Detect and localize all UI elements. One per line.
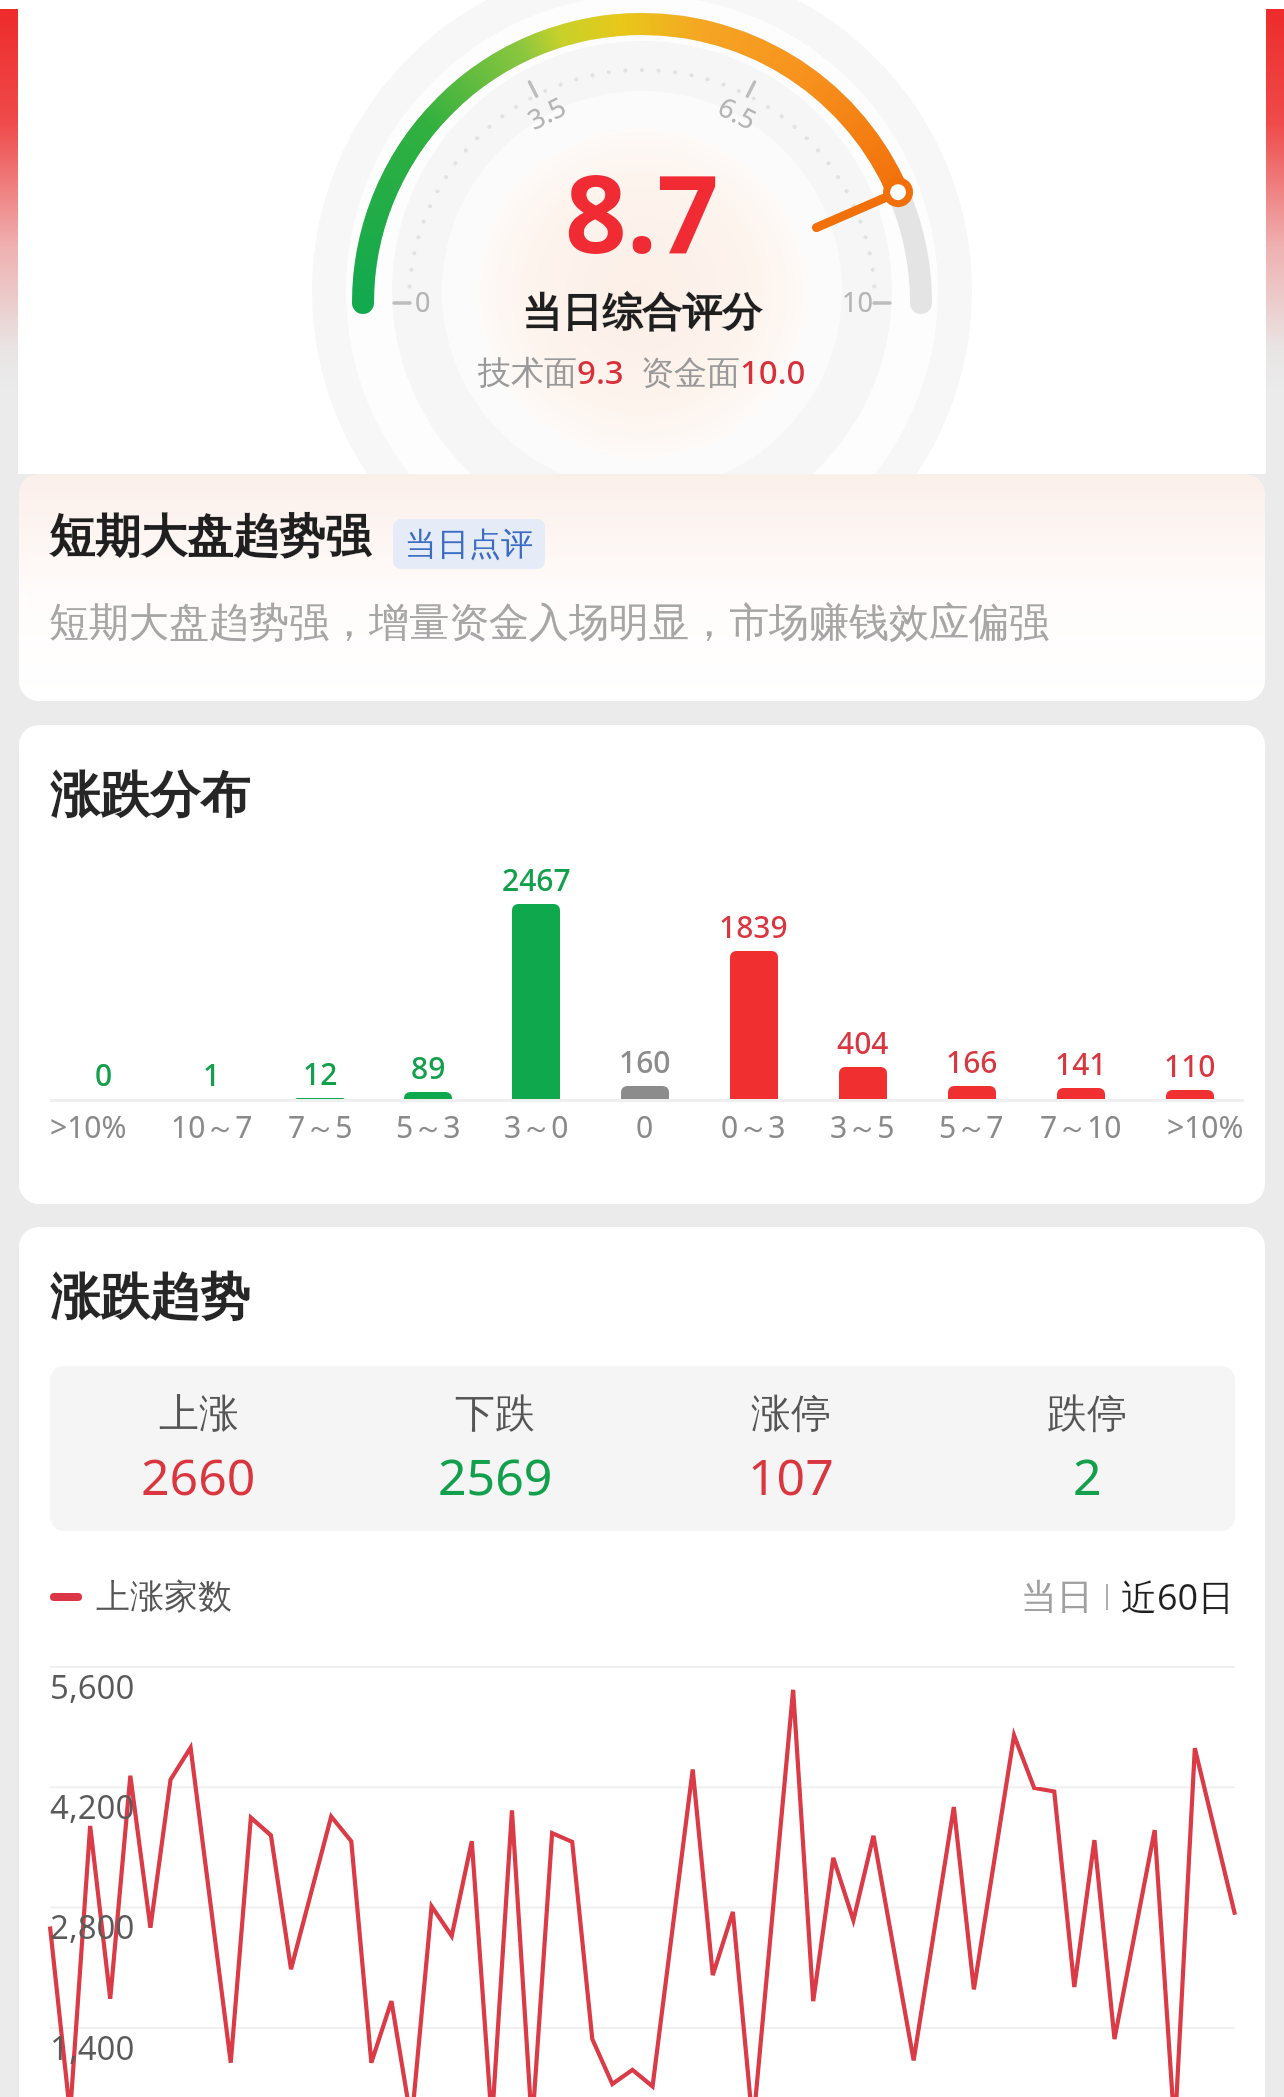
staticText: 2467 xyxy=(502,859,571,900)
staticText: 4,200 xyxy=(50,1784,135,1829)
staticText: 2569 xyxy=(438,1442,553,1510)
staticText: 涨跌分布 xyxy=(50,764,250,827)
button[interactable]: 短期大盘趋势强 xyxy=(19,474,1265,701)
staticText: 近60日 xyxy=(1121,1572,1235,1621)
button[interactable]: 涨跌分布 xyxy=(19,725,1265,1204)
staticText: 7～5 xyxy=(288,1106,353,1147)
staticText: 当日 xyxy=(1021,1574,1093,1619)
staticText: 2660 xyxy=(141,1442,256,1510)
staticText: 3～0 xyxy=(504,1106,569,1147)
button[interactable]: 涨停 xyxy=(643,1388,939,1510)
staticText: 1 xyxy=(203,1054,221,1095)
staticText: 2,800 xyxy=(50,1904,135,1949)
staticText: 89 xyxy=(411,1047,446,1088)
button[interactable]: 近60日 xyxy=(1121,1564,1235,1629)
staticText: 上涨 xyxy=(159,1388,239,1438)
staticText: 0 xyxy=(95,1054,113,1095)
staticText: 5～7 xyxy=(939,1106,1004,1147)
staticText: 1,400 xyxy=(50,2025,135,2070)
staticText: 0～3 xyxy=(721,1106,786,1147)
staticText: 5,600 xyxy=(50,1664,135,1709)
staticText: 12 xyxy=(303,1053,338,1094)
button[interactable]: 跌停 xyxy=(939,1388,1235,1510)
staticText: 上涨家数 xyxy=(96,1575,232,1618)
staticText: >10% xyxy=(1167,1106,1244,1147)
staticText: 166 xyxy=(946,1041,998,1082)
staticText: 0 xyxy=(636,1106,654,1147)
staticText: 跌停 xyxy=(1047,1388,1127,1438)
staticText: >10% xyxy=(50,1106,127,1147)
staticText: 涨跌趋势 xyxy=(50,1266,250,1329)
staticText: 7～10 xyxy=(1040,1106,1122,1147)
staticText: 涨停 xyxy=(751,1388,831,1438)
button[interactable]: 当日点评 xyxy=(393,519,545,569)
staticText: 5～3 xyxy=(396,1106,461,1147)
staticText: 110 xyxy=(1164,1045,1216,1086)
staticText: 下跌 xyxy=(455,1388,535,1438)
staticText: 8.7 xyxy=(565,138,719,285)
button[interactable]: 上涨 xyxy=(50,1388,347,1510)
staticText: 141 xyxy=(1055,1043,1107,1084)
staticText: 技术面9.3 资金面10.0 xyxy=(478,349,806,394)
staticText: 当日综合评分 xyxy=(522,287,762,337)
other: 当日综合评分仪表盘 8.7 xyxy=(0,0,1284,474)
staticText: 1839 xyxy=(719,906,788,947)
staticText: 10～7 xyxy=(171,1106,253,1147)
staticText: 3～5 xyxy=(830,1106,895,1147)
staticText: 6.5 xyxy=(712,87,764,138)
button[interactable]: 下跌 xyxy=(347,1388,643,1510)
staticText: 0 xyxy=(415,283,431,320)
button[interactable]: 当日 xyxy=(1021,1566,1093,1627)
staticText: 160 xyxy=(619,1041,671,1082)
staticText: 404 xyxy=(837,1022,889,1063)
staticText: 2 xyxy=(1073,1442,1102,1510)
staticText: 当日点评 xyxy=(405,524,533,564)
staticText: 107 xyxy=(748,1442,834,1510)
staticText: 10 xyxy=(842,283,873,320)
staticText: 短期大盘趋势强 xyxy=(49,508,371,566)
staticText: 短期大盘趋势强，增量资金入场明显，市场赚钱效应偏强 xyxy=(49,597,1049,647)
staticText: 3.5 xyxy=(521,87,572,138)
